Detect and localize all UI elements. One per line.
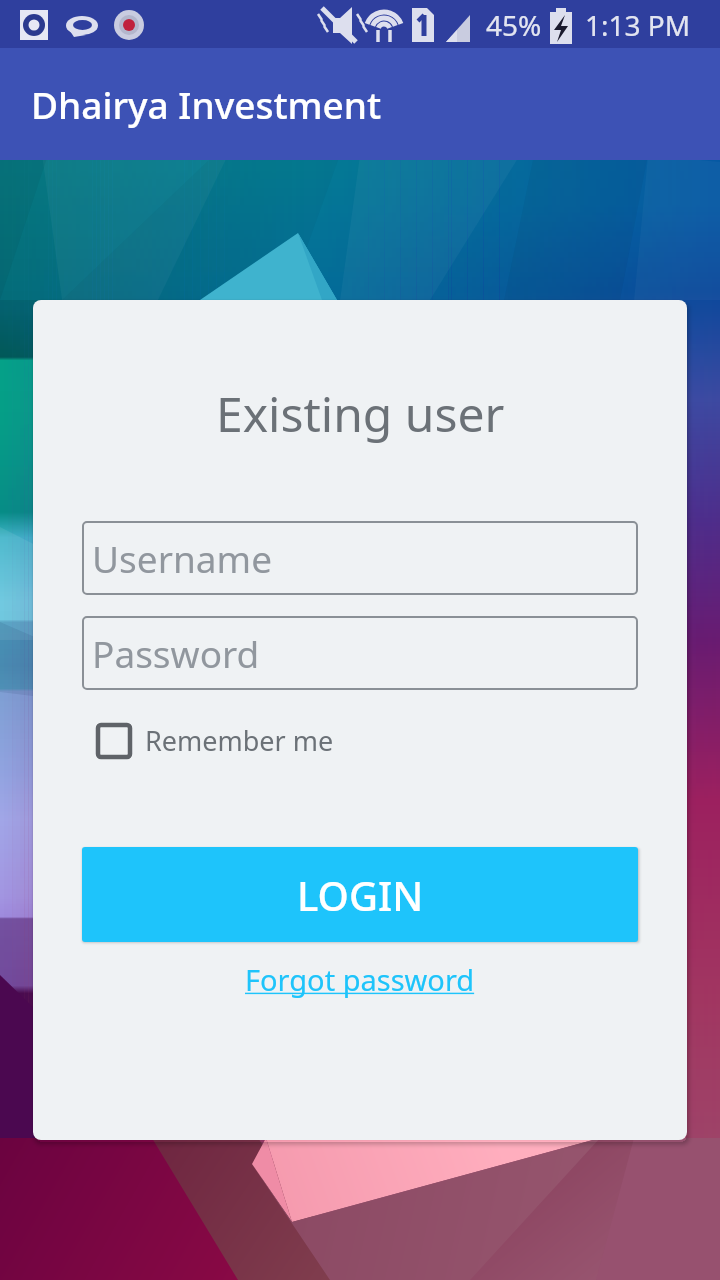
button[interactable]: Forgot password <box>33 960 687 1004</box>
staticText: Username <box>92 533 273 583</box>
button[interactable]: Remember me <box>96 722 334 759</box>
staticText: 45% <box>486 6 542 44</box>
staticText: 1:13 PM <box>585 6 691 44</box>
staticText: Password <box>92 628 260 678</box>
button[interactable]: Password <box>82 616 638 690</box>
button[interactable]: Username <box>82 521 638 595</box>
staticText: Dhairya Investment <box>31 79 382 129</box>
button[interactable]: LOGIN <box>82 847 638 942</box>
staticText: Remember me <box>145 722 334 759</box>
staticText: LOGIN <box>297 868 424 922</box>
staticText: Existing user <box>216 381 505 446</box>
staticText: Forgot password <box>245 960 475 999</box>
